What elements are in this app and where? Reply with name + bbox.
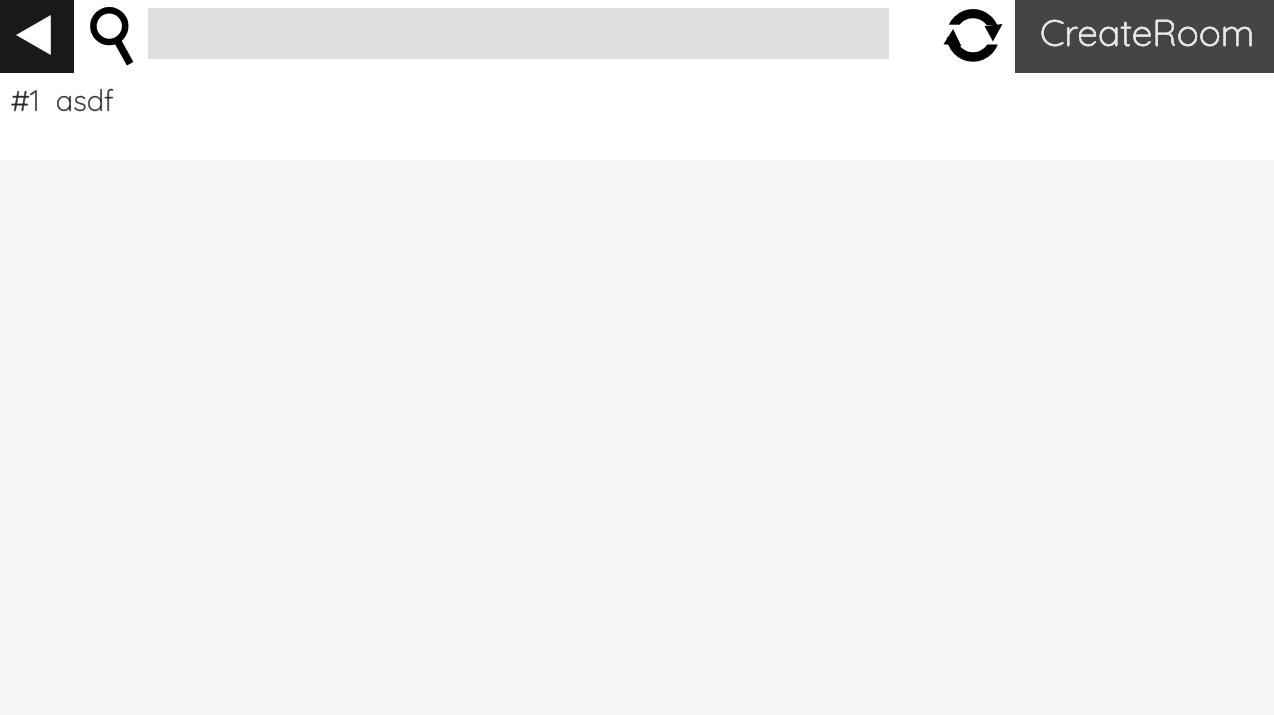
button[interactable]: Refresh	[946, 8, 1000, 62]
button[interactable]: #1 asdf	[0, 73, 1274, 153]
button[interactable]: Search	[78, 0, 140, 73]
staticText: CreateRoom	[1040, 9, 1255, 55]
button[interactable]: CreateRoom	[1015, 0, 1274, 73]
staticText: #1 asdf	[11, 82, 114, 118]
button[interactable]: Back	[0, 0, 74, 73]
staticText: #1 asdf	[11, 82, 114, 118]
staticText: CreateRoom	[1040, 9, 1255, 55]
